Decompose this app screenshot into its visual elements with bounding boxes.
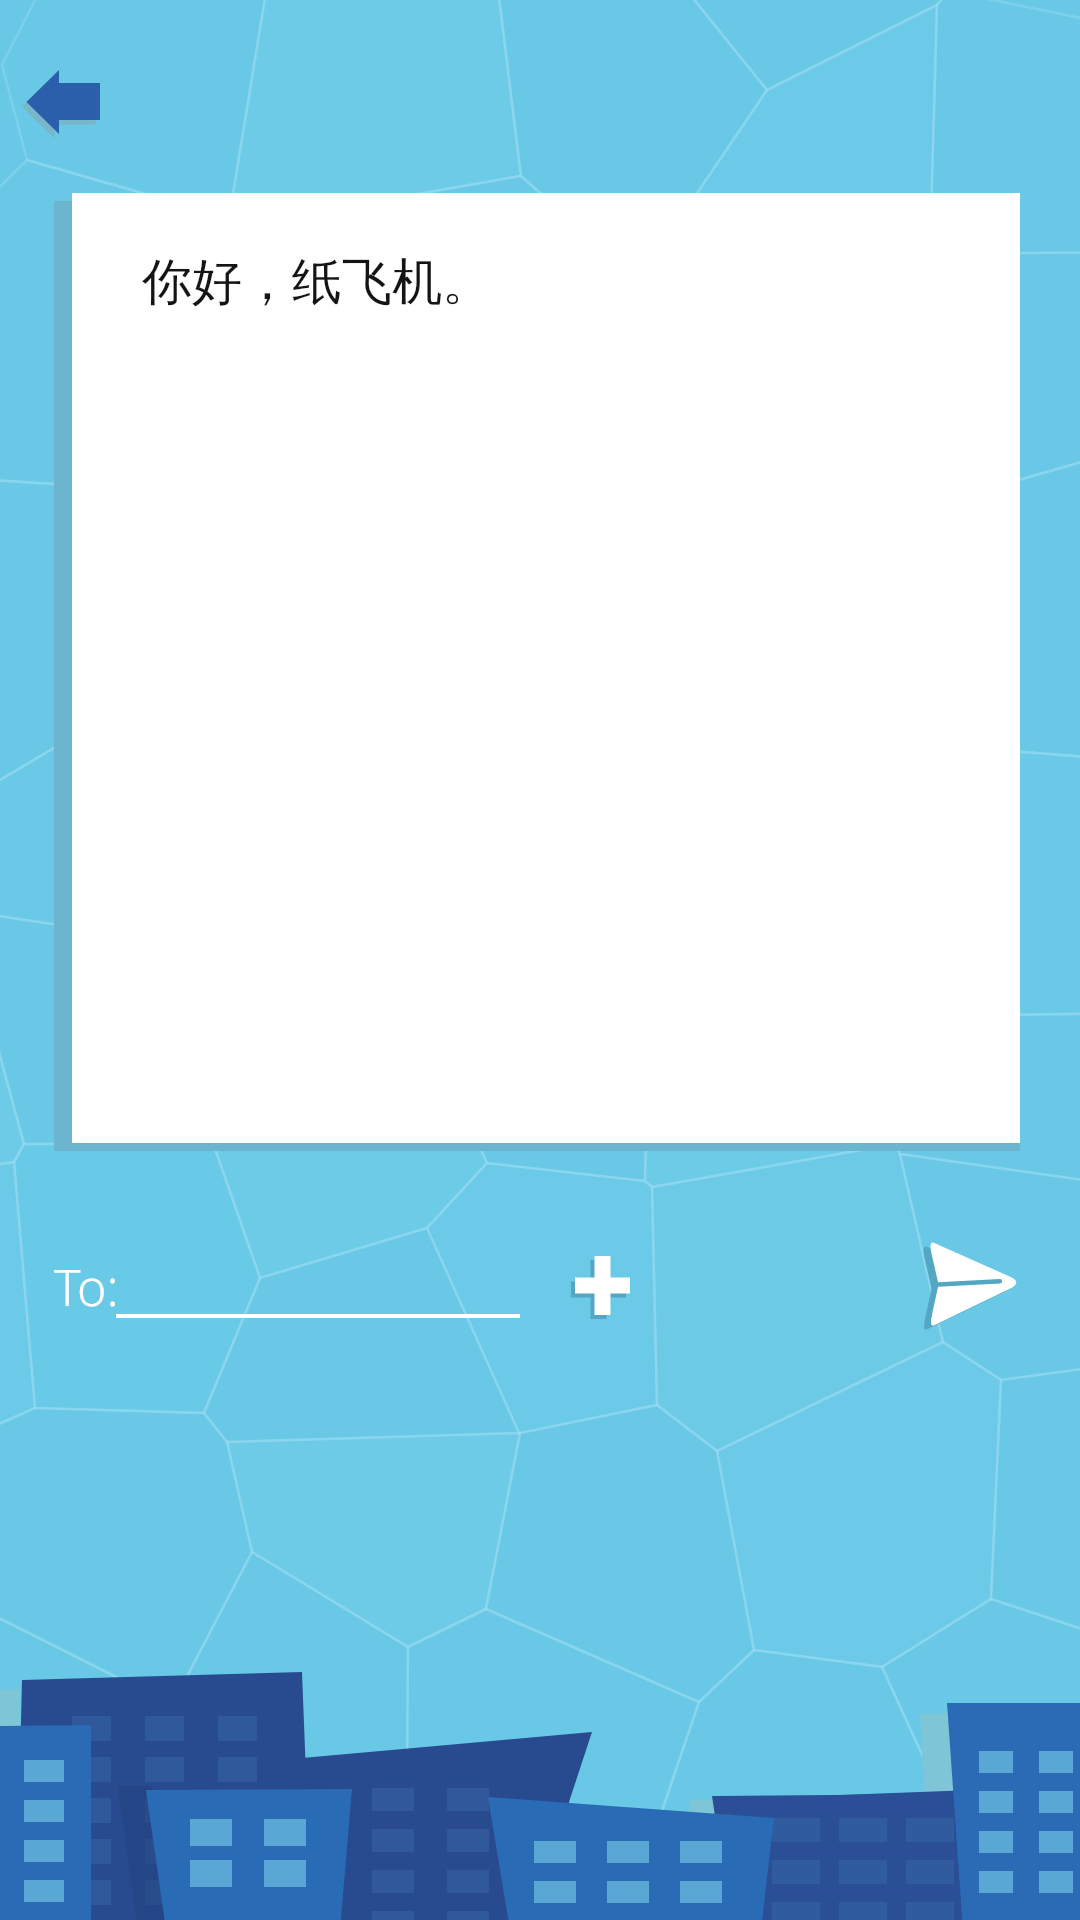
button[interactable]: Back (20, 62, 106, 140)
staticText: To: (54, 1253, 119, 1321)
staticText: 你好，纸飞机。 (142, 251, 492, 314)
button[interactable]: 你好，纸飞机。 (72, 193, 1020, 1143)
button[interactable]: Add attachment (557, 1240, 648, 1331)
button[interactable]: Send (912, 1230, 1030, 1334)
button[interactable]: To: (46, 1250, 532, 1330)
